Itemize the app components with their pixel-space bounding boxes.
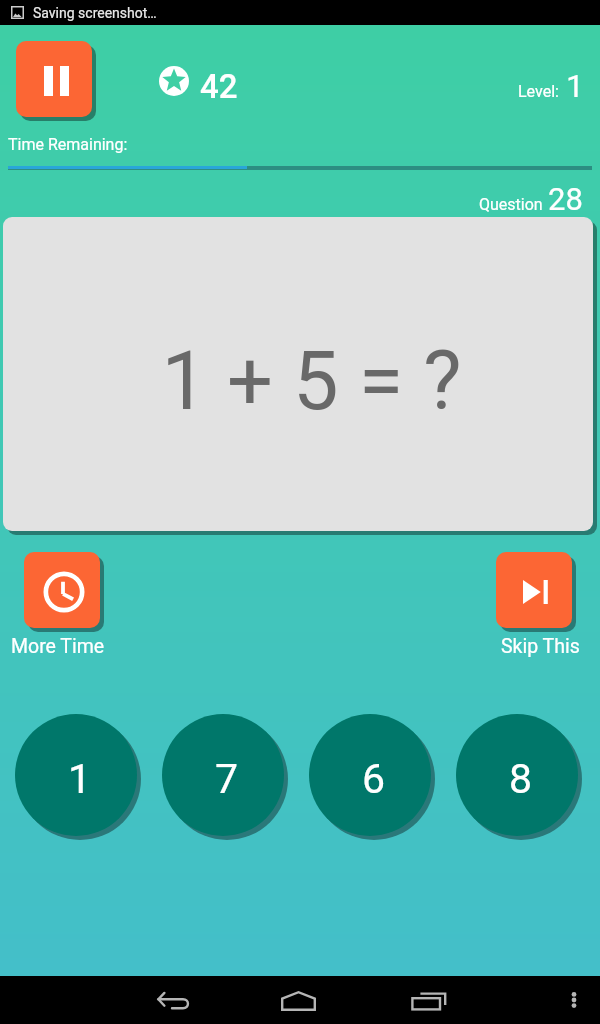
staticText: 6 bbox=[362, 755, 386, 803]
staticText: Level: bbox=[518, 82, 559, 101]
staticText: 8 bbox=[509, 755, 533, 803]
staticText: 1 + 5 = ? bbox=[161, 334, 462, 429]
button[interactable]: 1 bbox=[15, 714, 137, 836]
button[interactable]: 8 bbox=[456, 714, 578, 836]
staticText: Saving screenshot… bbox=[33, 5, 157, 21]
button[interactable]: 7 bbox=[162, 714, 284, 836]
button[interactable]: 6 bbox=[309, 714, 431, 836]
button[interactable]: Back bbox=[145, 976, 194, 1024]
staticText: 1 bbox=[68, 755, 92, 803]
staticText: 42 bbox=[200, 67, 238, 106]
button[interactable]: Pause bbox=[16, 41, 92, 117]
staticText: 1 bbox=[566, 67, 584, 105]
button[interactable]: More options bbox=[554, 976, 594, 1024]
button[interactable]: Recent apps bbox=[404, 976, 453, 1024]
staticText: More Time bbox=[11, 635, 105, 658]
button[interactable]: Home bbox=[275, 976, 324, 1024]
button[interactable]: More Time bbox=[24, 552, 100, 628]
button[interactable]: Skip This bbox=[496, 552, 572, 628]
staticText: 28 bbox=[548, 181, 583, 217]
staticText: Time Remaining: bbox=[8, 135, 128, 154]
staticText: Question bbox=[479, 195, 543, 214]
staticText: Skip This bbox=[501, 635, 580, 658]
staticText: 7 bbox=[215, 755, 239, 803]
